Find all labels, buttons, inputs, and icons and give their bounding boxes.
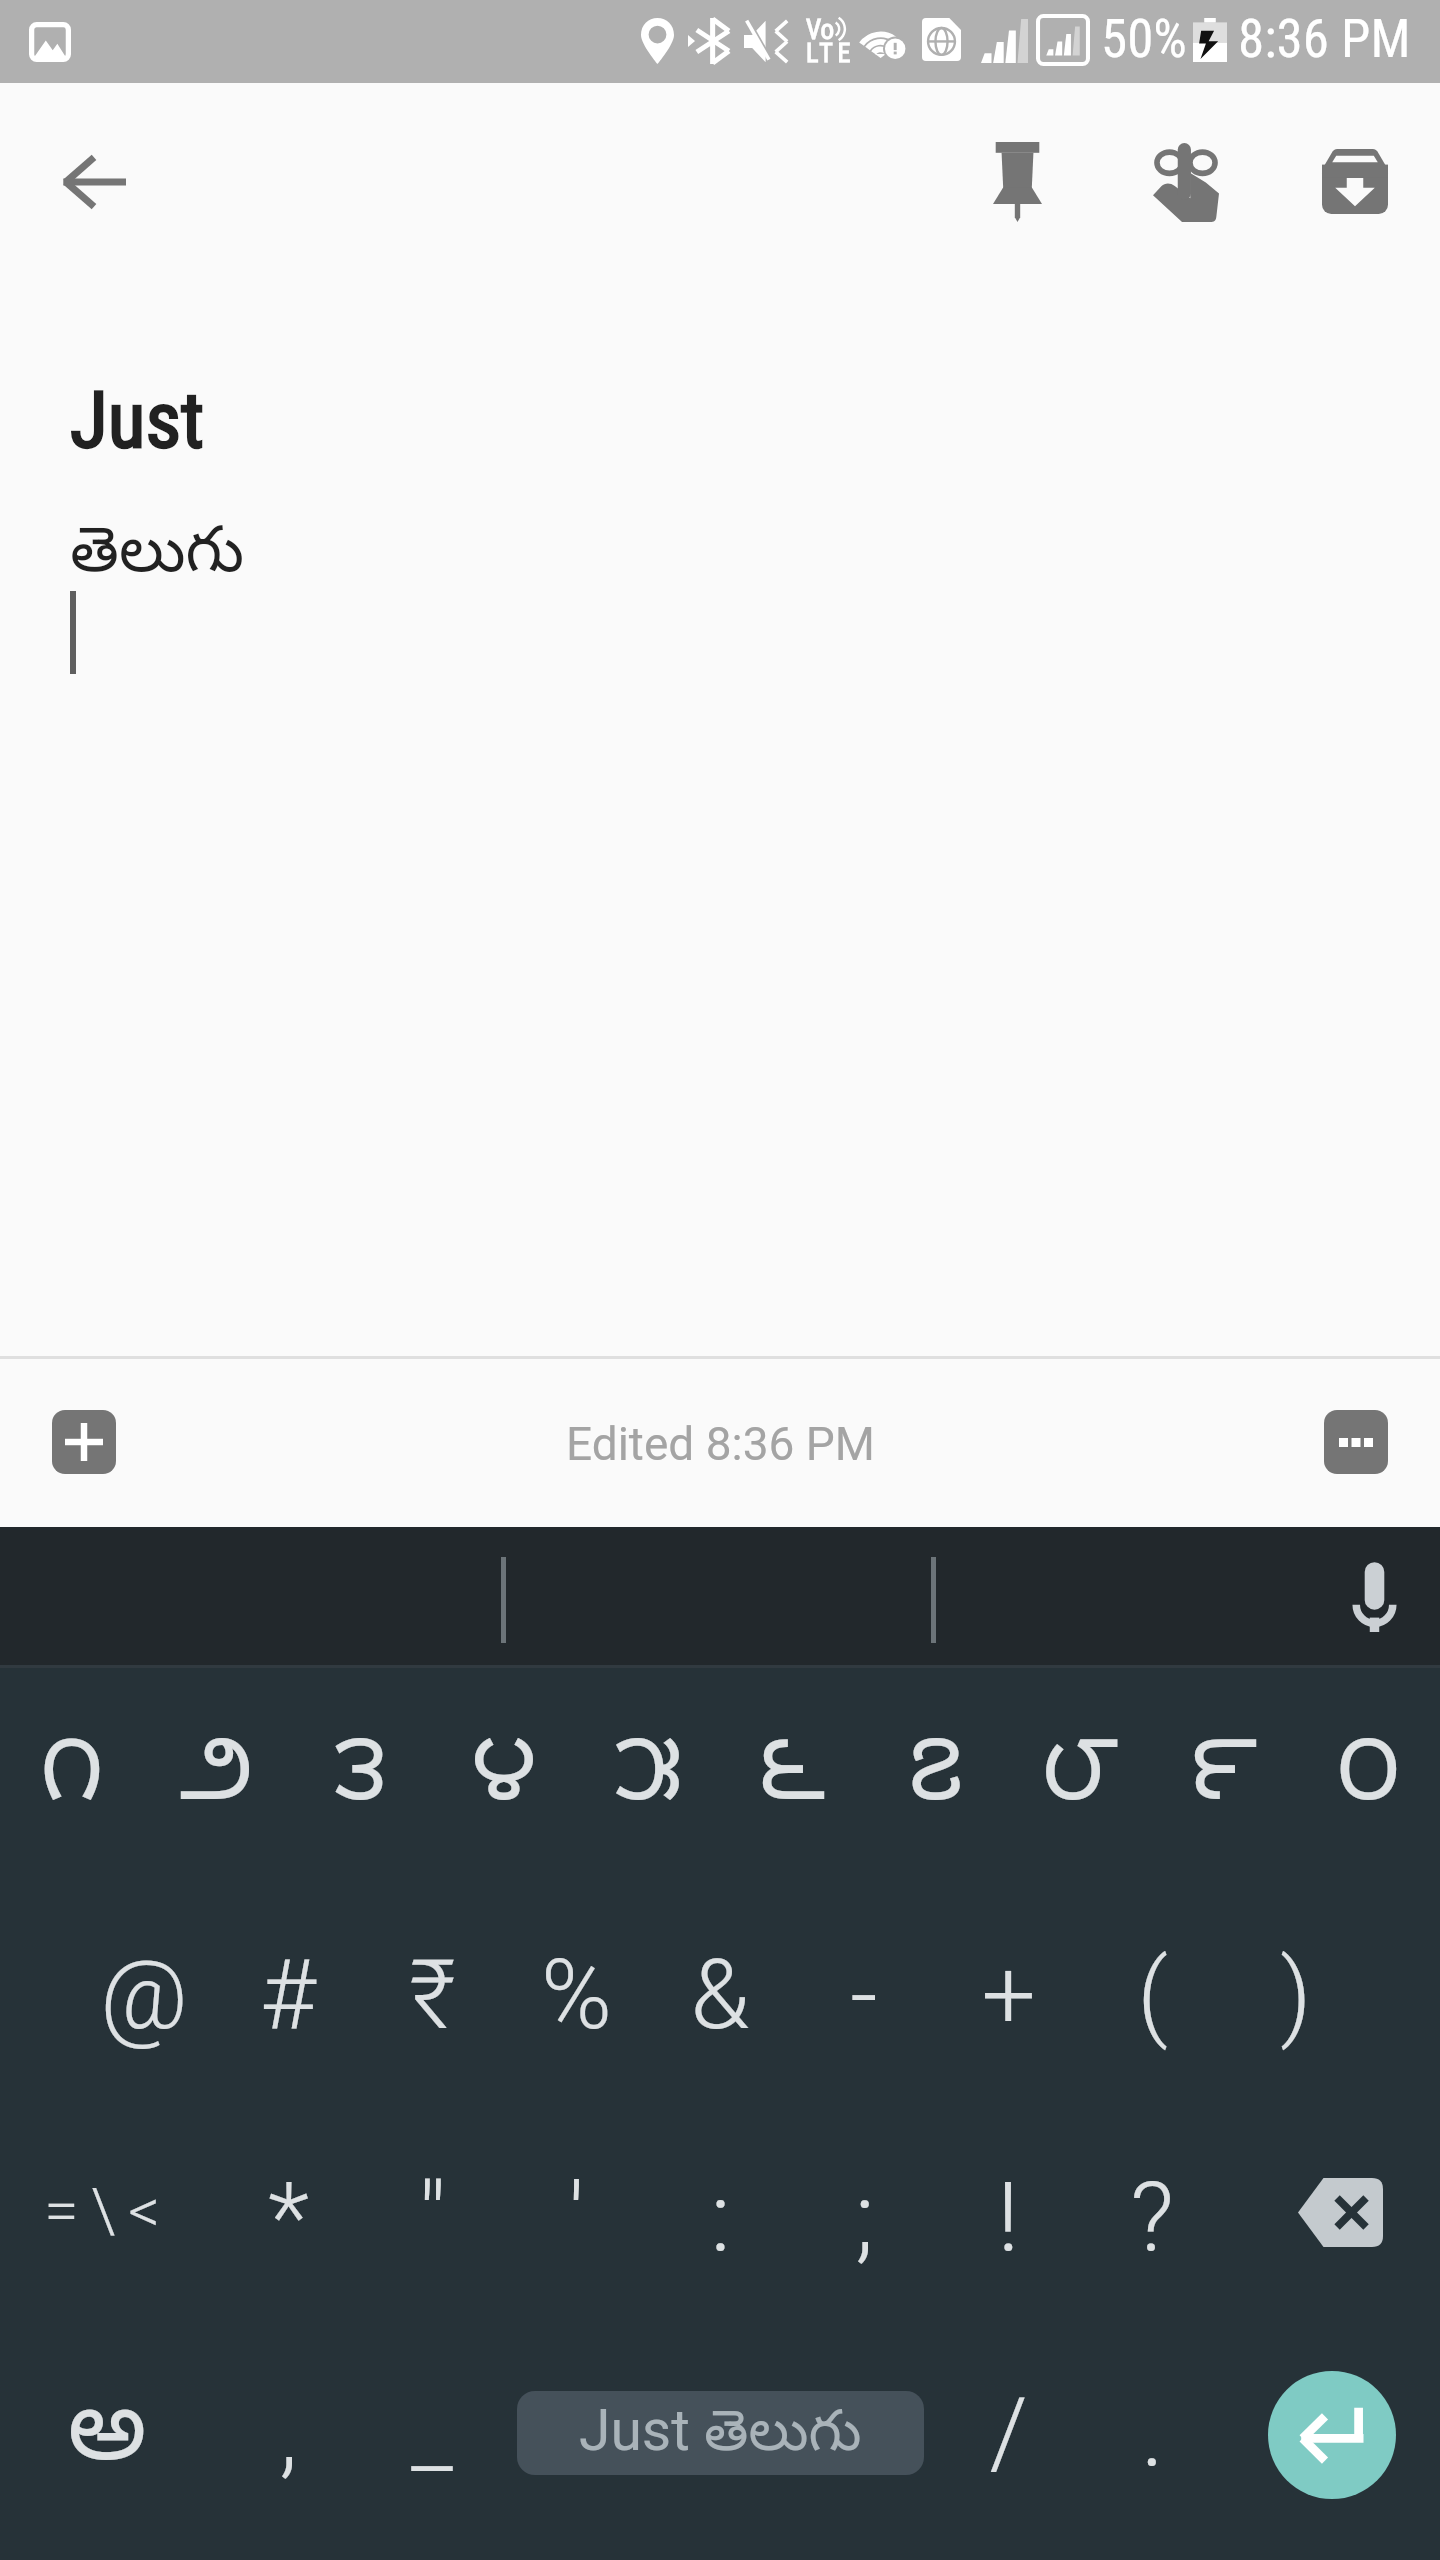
button[interactable]: "	[360, 2107, 504, 2330]
staticText: అ	[67, 2373, 147, 2507]
staticText: '	[568, 2162, 585, 2275]
button[interactable]: #	[216, 1884, 360, 2107]
button[interactable]: Archive	[1283, 109, 1427, 253]
staticText: "	[418, 2162, 446, 2275]
button[interactable]: Voice input	[1314, 1536, 1434, 1656]
button[interactable]: Pin note	[945, 109, 1089, 253]
staticText: 50%	[1101, 8, 1187, 70]
staticText: /	[989, 2377, 1028, 2490]
button[interactable]: )	[1224, 1884, 1368, 2107]
staticText: @	[100, 1939, 188, 2052]
button[interactable]: ౩	[288, 1669, 432, 1892]
button[interactable]: ₹	[360, 1884, 504, 2107]
staticText: ౮	[1041, 1716, 1119, 1846]
button[interactable]: '	[504, 2107, 648, 2330]
button[interactable]: ;	[792, 2107, 936, 2330]
button[interactable]: .	[1080, 2322, 1224, 2545]
staticText: 8:36 PM	[1238, 8, 1411, 70]
staticText: ౯	[1190, 1716, 1258, 1846]
staticText: ౦	[1336, 1716, 1401, 1846]
button[interactable]: ?	[1080, 2107, 1224, 2330]
button[interactable]: More options	[1302, 1388, 1410, 1496]
button[interactable]: Navigate up	[25, 109, 169, 253]
staticText: ,	[279, 2377, 298, 2490]
staticText: !	[997, 2162, 1019, 2275]
staticText: LTE	[806, 38, 855, 68]
staticText: (	[1137, 1939, 1168, 2052]
button[interactable]: ౭	[864, 1669, 1008, 1892]
button[interactable]: :	[648, 2107, 792, 2330]
staticText: %	[541, 1939, 612, 2052]
staticText: _	[411, 2377, 453, 2490]
button[interactable]: అ	[35, 2328, 179, 2551]
button[interactable]: +	[936, 1884, 1080, 2107]
button[interactable]: ౯	[1152, 1669, 1296, 1892]
button[interactable]: ౪	[432, 1669, 576, 1892]
button[interactable]: %	[504, 1884, 648, 2107]
staticText: ౬	[758, 1716, 826, 1846]
staticText: ₹	[409, 1939, 456, 2052]
staticText: ;	[855, 2162, 874, 2275]
staticText: ౨	[179, 1716, 254, 1846]
staticText: ౭	[908, 1716, 964, 1846]
staticText: = \ <	[44, 2174, 160, 2247]
button[interactable]: -	[792, 1884, 936, 2107]
button[interactable]: Backspace	[1296, 2107, 1440, 2330]
staticText: ౪	[471, 1716, 537, 1846]
button[interactable]: Enter	[1268, 2371, 1396, 2499]
staticText: &	[690, 1939, 750, 2052]
button[interactable]: = \ <	[30, 2099, 174, 2322]
staticText: #	[260, 1939, 316, 2052]
button[interactable]: (	[1080, 1884, 1224, 2107]
staticText: .	[1141, 2377, 1164, 2490]
staticText: ౧	[40, 1716, 104, 1846]
staticText: -	[850, 1939, 878, 2052]
button[interactable]: ౬	[720, 1669, 864, 1892]
button[interactable]: &	[648, 1884, 792, 2107]
button[interactable]: _	[360, 2322, 504, 2545]
button[interactable]: /	[936, 2322, 1080, 2545]
button[interactable]: ౦	[1296, 1669, 1440, 1892]
staticText: :	[710, 2162, 731, 2275]
button[interactable]: *	[216, 2107, 360, 2330]
staticText: *	[268, 2162, 309, 2275]
staticText: ౫	[614, 1716, 683, 1846]
staticText: Edited 8:36 PM	[566, 1417, 875, 1471]
staticText: )	[1280, 1939, 1312, 2052]
button[interactable]: Add	[30, 1388, 138, 1496]
button[interactable]: ౧	[0, 1669, 144, 1892]
button[interactable]: Remind me	[1114, 109, 1258, 253]
button[interactable]: @	[72, 1884, 216, 2107]
button[interactable]: Just	[0, 280, 1440, 1356]
staticText: Just	[70, 375, 205, 466]
button[interactable]: ౨	[144, 1669, 288, 1892]
staticText: Just తెలుగు	[579, 2397, 862, 2475]
button[interactable]: ,	[216, 2322, 360, 2545]
button[interactable]: ౫	[576, 1669, 720, 1892]
button[interactable]: !	[936, 2107, 1080, 2330]
staticText: +	[981, 1939, 1036, 2052]
staticText: Vo	[806, 14, 835, 46]
button[interactable]: Just తెలుగు	[517, 2391, 924, 2475]
staticText: తెలుగు	[70, 516, 245, 601]
staticText: ౩	[334, 1716, 387, 1846]
staticText: ?	[1130, 2162, 1174, 2275]
button[interactable]: ౮	[1008, 1669, 1152, 1892]
